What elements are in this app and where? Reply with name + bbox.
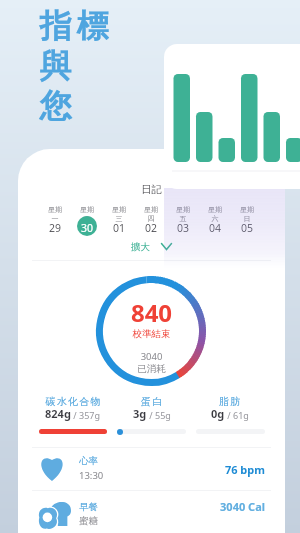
staticText: 星期 [39, 205, 71, 214]
button[interactable]: 蛋白 [107, 395, 197, 423]
staticText: 二 [71, 214, 103, 223]
staticText: 824g [45, 406, 71, 421]
button[interactable]: 脂肪 [185, 395, 275, 423]
button[interactable]: 星期 [71, 203, 103, 237]
staticText: 星期 [167, 205, 199, 214]
staticText: 0g [211, 406, 225, 421]
button[interactable]: 星期 [135, 203, 167, 237]
staticText: 指標 [37, 6, 111, 46]
button[interactable]: Heart rate [18, 448, 285, 491]
staticText: 蜜糖 [79, 515, 98, 527]
staticText: 一 [39, 214, 71, 223]
button[interactable]: 星期 [231, 203, 263, 237]
staticText: 04 [199, 221, 231, 235]
staticText: 29 [39, 221, 71, 235]
button[interactable]: 星期 [199, 203, 231, 237]
staticText: 六 [199, 214, 231, 223]
staticText: 02 [135, 221, 167, 235]
staticText: 心率 [79, 455, 98, 467]
other: Heart rate [39, 454, 65, 481]
staticText: 76 bpm [18, 462, 265, 477]
staticText: 您 [37, 86, 74, 126]
staticText: 星期 [135, 205, 167, 214]
staticText: 日記 [18, 183, 285, 196]
staticText: 三 [103, 214, 135, 223]
staticText: 05 [231, 221, 263, 235]
staticText: 五 [167, 214, 199, 223]
staticText: 早餐 [79, 501, 98, 513]
staticText: 日 [231, 214, 263, 223]
staticText: 蛋白 [141, 395, 164, 408]
staticText: 星期 [199, 205, 231, 214]
button[interactable]: Breakfast [18, 494, 285, 533]
button[interactable]: 碳水化合物 [28, 395, 118, 423]
staticText: 3040 已消耗 [18, 350, 285, 374]
staticText: 四 [135, 214, 167, 223]
staticText: 校準結束 [18, 328, 285, 340]
button[interactable]: 擴大 [131, 240, 172, 253]
staticText: 碳水化合物 [45, 395, 101, 408]
staticText: 星期 [103, 205, 135, 214]
staticText: 3g [133, 406, 147, 421]
staticText: 與 [37, 46, 74, 86]
staticText: 840 [18, 296, 285, 329]
button[interactable]: 星期 [167, 203, 199, 237]
staticText: 星期 [71, 205, 103, 214]
staticText: 30 [71, 221, 103, 235]
staticText: 3040 Cal [18, 499, 265, 514]
staticText: 03 [167, 221, 199, 235]
staticText: 脂肪 [219, 395, 242, 408]
other: Breakfast [38, 502, 71, 530]
button[interactable]: 星期 [103, 203, 135, 237]
staticText: 13:30 [79, 469, 104, 482]
staticText: / 61g [225, 409, 249, 421]
staticText: 擴大 [131, 241, 150, 253]
staticText: / 55g [147, 409, 171, 421]
staticText: / 357g [71, 409, 101, 421]
staticText: 星期 [231, 205, 263, 214]
button[interactable]: 星期 [39, 203, 71, 237]
staticText: 01 [103, 221, 135, 235]
